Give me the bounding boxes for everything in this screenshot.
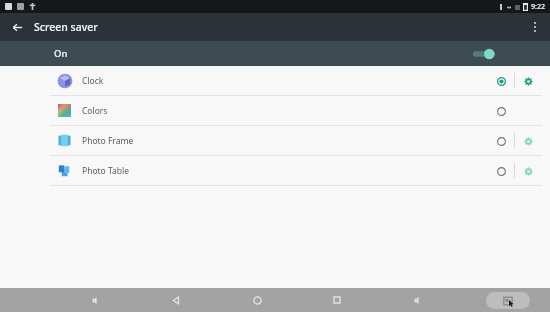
button[interactable]: Back	[165, 289, 187, 311]
button[interactable]: Select Photo Frame	[488, 128, 514, 154]
staticText: Screen saver	[34, 20, 98, 34]
staticText: ↔	[507, 4, 512, 10]
button[interactable]: Volume down	[406, 289, 428, 311]
staticText: On	[54, 47, 68, 60]
button[interactable]: Clock settings	[515, 68, 541, 94]
button[interactable]: Back	[6, 16, 28, 38]
button[interactable]: Colors	[0, 96, 550, 125]
button[interactable]: Recents	[326, 289, 348, 311]
button[interactable]: Select Colors	[488, 98, 514, 124]
button[interactable]: Volume	[84, 289, 106, 311]
staticText: Colors	[82, 105, 108, 117]
button[interactable]: On	[0, 41, 550, 66]
button[interactable]: Clock selected	[488, 68, 514, 94]
button[interactable]: Home	[246, 289, 268, 311]
button[interactable]: Select Photo Table	[488, 158, 514, 184]
staticText: Photo Table	[82, 165, 129, 177]
button[interactable]: Photo Table settings	[515, 158, 541, 184]
button[interactable]: Clock	[0, 66, 550, 95]
button[interactable]: Photo Frame	[0, 126, 550, 155]
staticText: 9:22	[531, 2, 545, 12]
button[interactable]: More options	[524, 16, 546, 38]
button[interactable]: Photo Frame settings	[515, 128, 541, 154]
staticText: Clock	[82, 75, 104, 87]
button[interactable]: Screenshot	[486, 292, 530, 309]
staticText: Photo Frame	[82, 135, 134, 147]
button[interactable]: Photo Table	[0, 156, 550, 185]
